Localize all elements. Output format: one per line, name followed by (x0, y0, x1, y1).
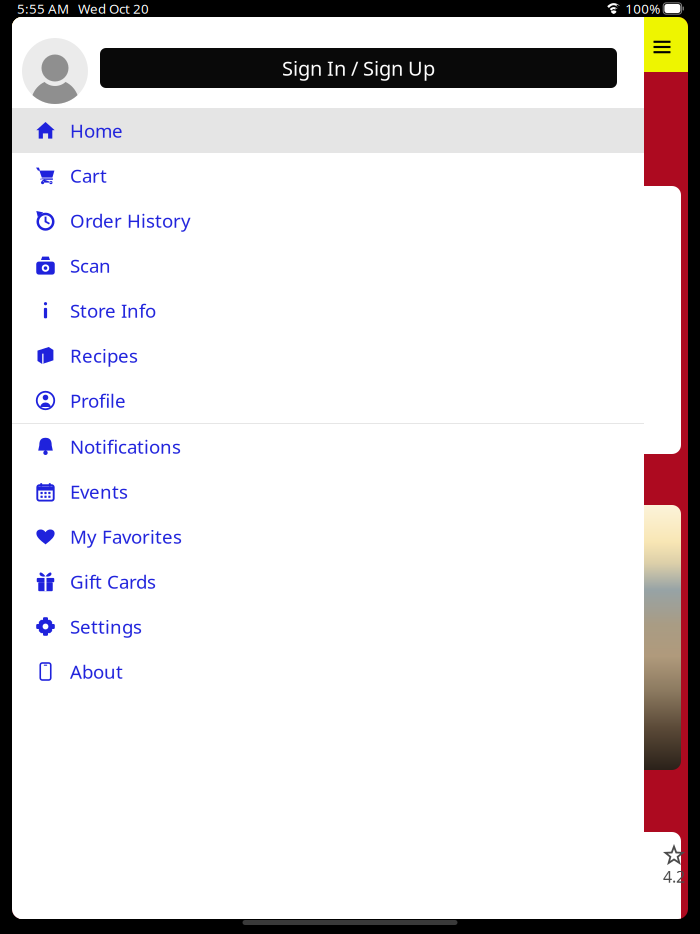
staticText: Recipes (70, 343, 138, 368)
staticText: Gift Cards (70, 569, 156, 594)
staticText: 100% (625, 0, 660, 17)
staticText: Events (70, 479, 128, 504)
staticText: 5:55 AM (17, 0, 69, 17)
button[interactable]: Profile (12, 378, 644, 423)
button[interactable]: Cart (12, 153, 644, 198)
button[interactable]: Scan (12, 243, 644, 288)
staticText: Wed Oct 20 (78, 0, 149, 17)
button[interactable]: Order History (12, 198, 644, 243)
staticText: About (70, 659, 123, 684)
staticText: Home (70, 118, 123, 143)
button[interactable]: Gift Cards (12, 559, 644, 604)
button[interactable]: Events (12, 469, 644, 514)
staticText: My Favorites (70, 524, 182, 549)
staticText: Sign In / Sign Up (282, 55, 435, 81)
staticText: Notifications (70, 434, 181, 459)
staticText: Store Info (70, 298, 156, 323)
button[interactable]: Open menu (645, 30, 679, 64)
button[interactable]: Recipes (12, 333, 644, 378)
staticText: Order History (70, 208, 191, 233)
staticText: Scan (70, 253, 111, 278)
staticText: Cart (70, 163, 107, 188)
button[interactable]: Settings (12, 604, 644, 649)
staticText: Settings (70, 614, 142, 639)
button[interactable]: My Favorites (12, 514, 644, 559)
button[interactable]: Store Info (12, 288, 644, 333)
button[interactable]: Home (12, 108, 644, 153)
staticText: 4.2 (663, 866, 685, 887)
button[interactable]: Notifications (12, 424, 644, 469)
button[interactable]: Sign In / Sign Up (100, 48, 617, 88)
button[interactable]: About (12, 649, 644, 694)
staticText: Profile (70, 388, 126, 413)
staticText: COUPONS (21, 472, 131, 502)
